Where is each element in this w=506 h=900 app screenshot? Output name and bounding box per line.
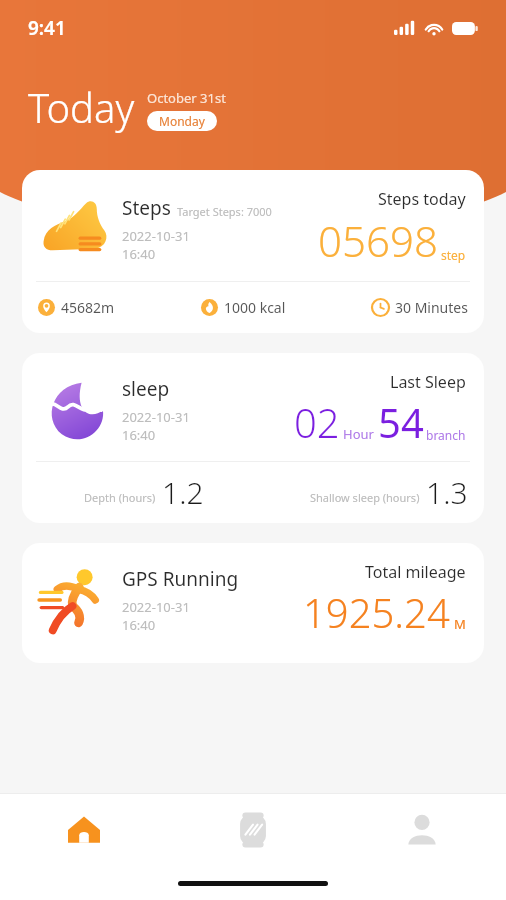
staticText: 54 [378, 395, 424, 449]
staticText: 16:40 [122, 245, 156, 263]
staticText: Shallow sleep (hours) [310, 490, 420, 505]
staticText: 02 [294, 395, 340, 449]
staticText: 2022-10-31 [122, 598, 190, 616]
staticText: 05698 [318, 212, 438, 269]
staticText: Target Steps: 7000 [177, 204, 272, 219]
staticText: Steps today [378, 188, 466, 210]
staticText: branch [426, 427, 466, 443]
staticText: Today [28, 80, 135, 134]
staticText: 9:41 [28, 15, 66, 41]
staticText: GPS Running [122, 566, 239, 592]
staticText: 30 Minutes [395, 298, 468, 317]
staticText: sleep [122, 376, 170, 402]
staticText: 2022-10-31 [122, 408, 190, 426]
staticText: Hour [343, 425, 374, 443]
staticText: 1.3 [426, 472, 468, 513]
staticText: 1925.24 [303, 585, 450, 639]
staticText: Total mileage [365, 561, 466, 583]
staticText: 2022-10-31 [122, 227, 190, 245]
button[interactable]: Profile [337, 794, 506, 866]
staticText: Depth (hours) [84, 490, 156, 505]
staticText: 1.2 [162, 472, 204, 513]
staticText: Steps [122, 195, 171, 221]
staticText: Monday [159, 113, 205, 129]
staticText: October 31st [147, 89, 226, 107]
staticText: 45682m [61, 298, 115, 317]
staticText: Last Sleep [390, 371, 466, 393]
button[interactable]: Steps [22, 170, 484, 333]
staticText: 1000 kcal [224, 298, 286, 317]
staticText: M [454, 615, 466, 633]
staticText: 16:40 [122, 616, 156, 634]
button[interactable]: sleep [22, 353, 484, 523]
button[interactable]: GPS Running [22, 543, 484, 663]
staticText: 16:40 [122, 426, 156, 444]
staticText: step [441, 247, 466, 263]
button[interactable]: Home [0, 794, 168, 866]
button[interactable]: Devices [168, 794, 337, 866]
